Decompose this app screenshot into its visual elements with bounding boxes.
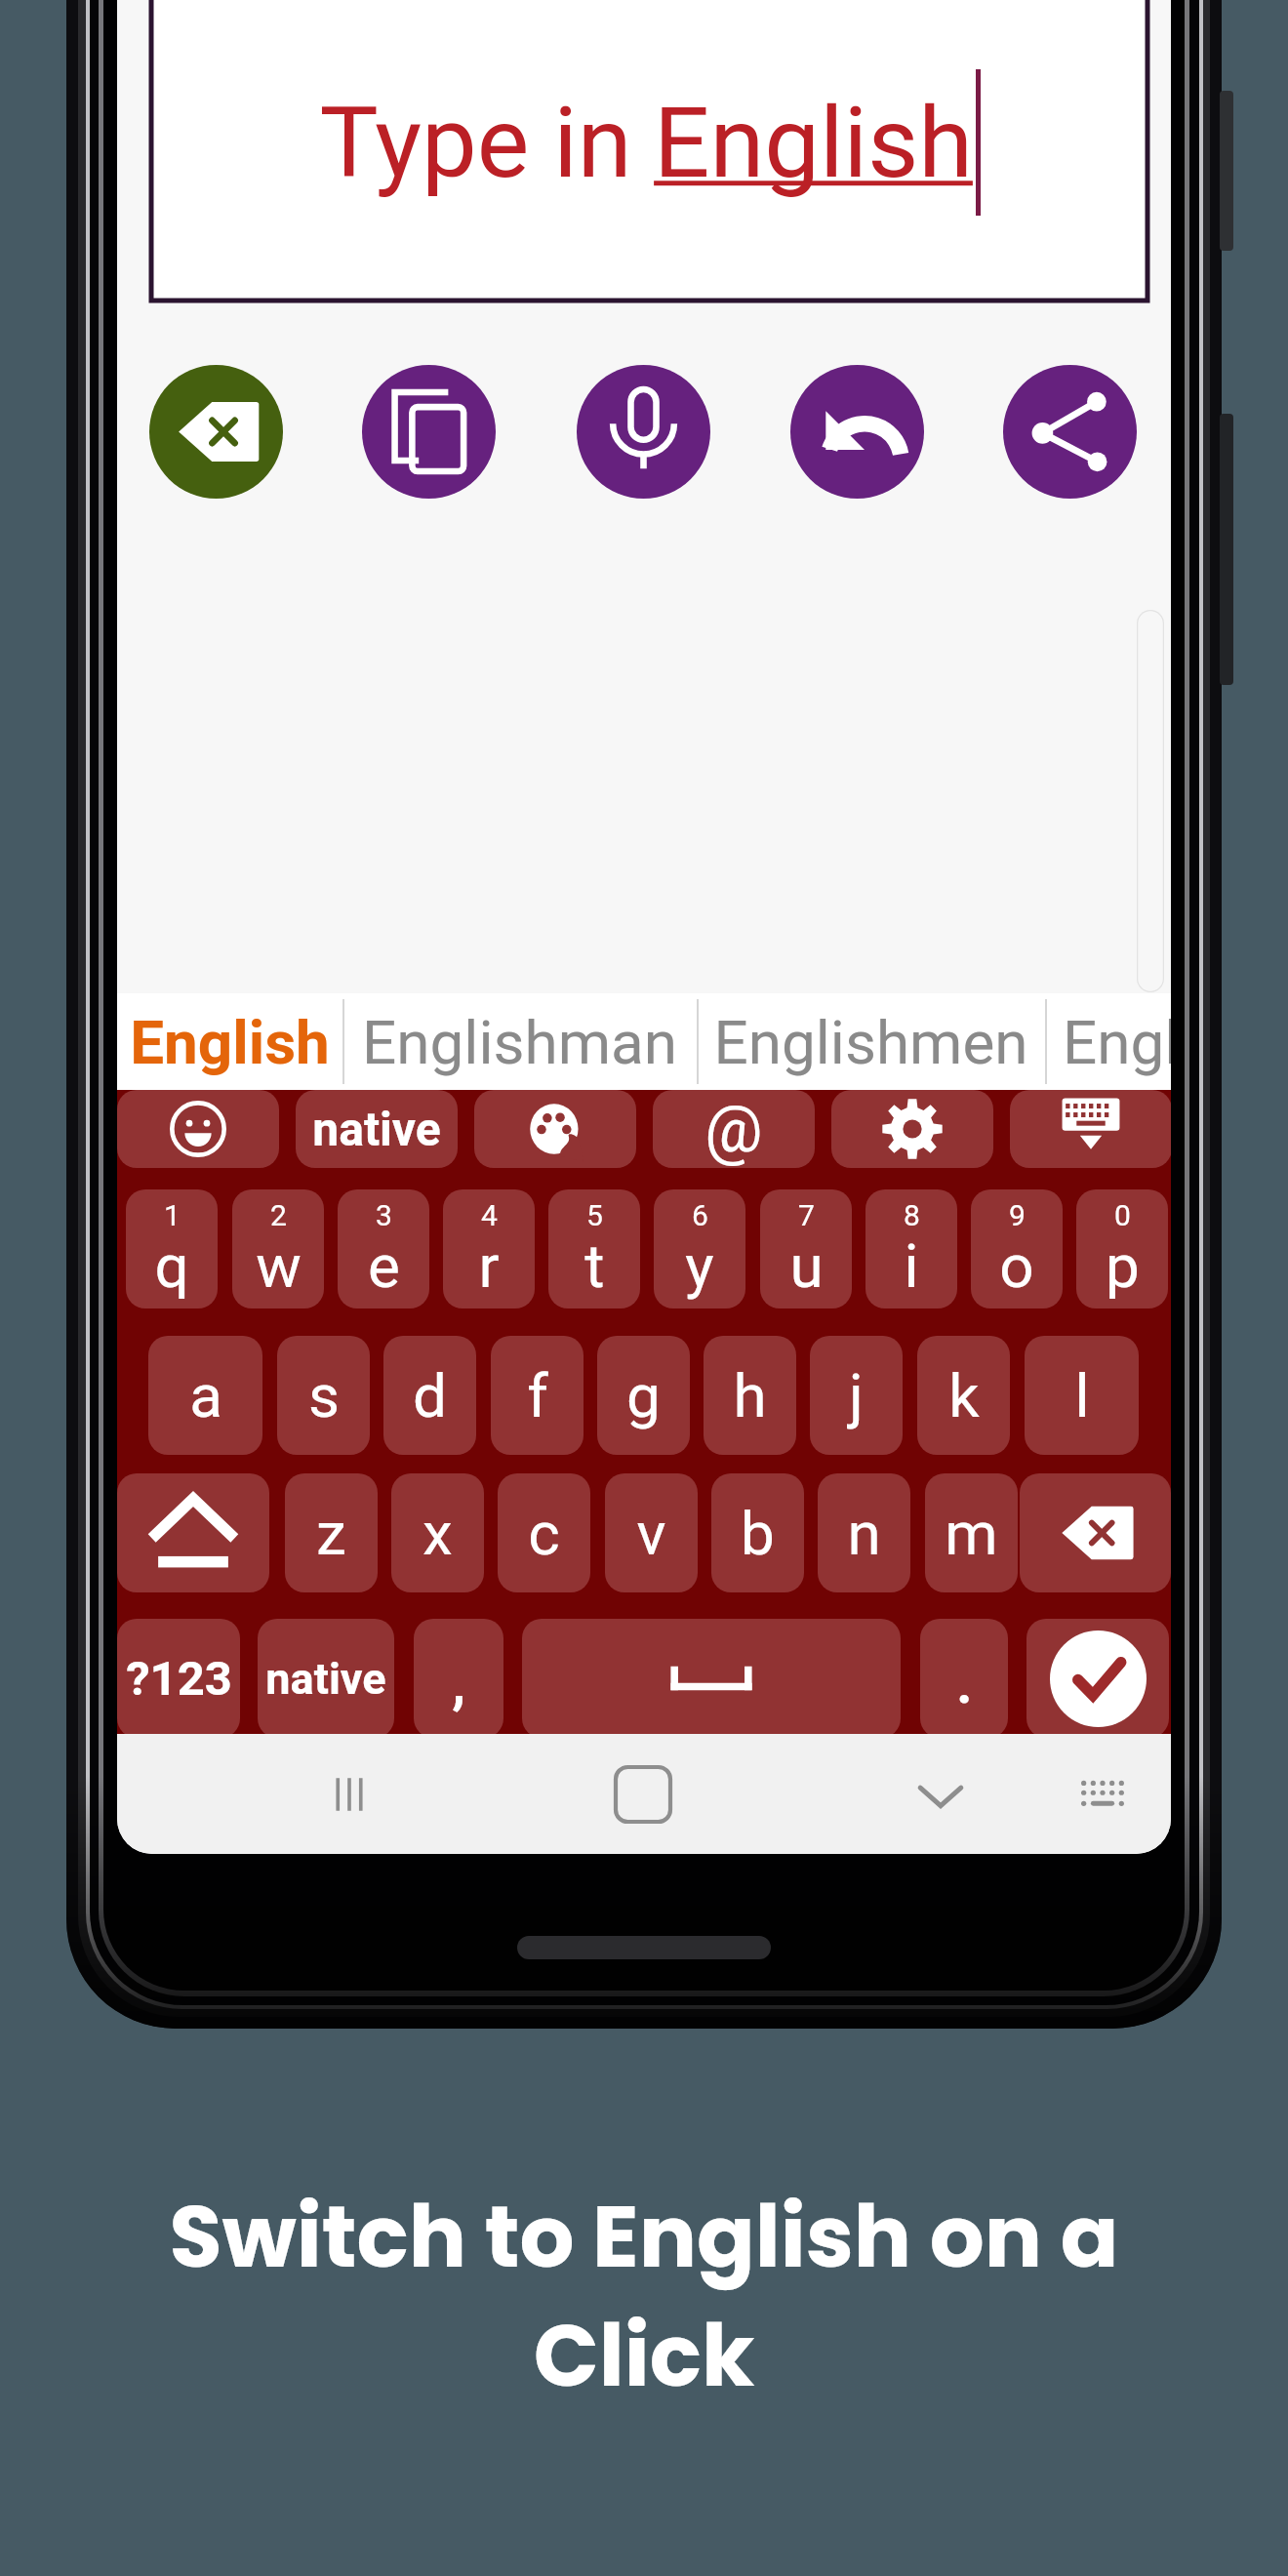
button[interactable]: s [277, 1336, 370, 1455]
button[interactable]: Hide keyboard [1010, 1090, 1171, 1168]
button[interactable]: Theme [474, 1090, 636, 1168]
button[interactable]: 6 [654, 1189, 745, 1308]
button[interactable]: Enter [1026, 1619, 1169, 1738]
button[interactable]: Share [1003, 365, 1137, 499]
staticText: 7 [798, 1198, 815, 1232]
staticText: Englishman [1063, 1007, 1171, 1078]
button[interactable]: 2 [232, 1189, 324, 1308]
staticText: b [741, 1498, 775, 1569]
button[interactable]: Voice input [577, 365, 710, 499]
staticText: Switch to English on a Click [98, 2177, 1190, 2416]
staticText: a [189, 1360, 222, 1431]
button[interactable]: d [383, 1336, 476, 1455]
button[interactable]: Copy [362, 365, 496, 499]
staticText: native [265, 1653, 386, 1705]
staticText: 1 [164, 1198, 181, 1232]
staticText: ?123 [126, 1651, 232, 1707]
staticText: e [368, 1230, 400, 1302]
button[interactable]: 3 [338, 1189, 429, 1308]
button[interactable]: b [711, 1473, 804, 1592]
staticText: c [528, 1498, 560, 1569]
button[interactable]: Englishman [1045, 993, 1171, 1090]
button[interactable]: l [1025, 1336, 1139, 1455]
button[interactable]: j [810, 1336, 903, 1455]
staticText: m [945, 1498, 998, 1569]
button[interactable]: @ [653, 1090, 815, 1168]
staticText: o [999, 1230, 1034, 1302]
staticText: t [584, 1230, 605, 1302]
button[interactable]: , [414, 1619, 503, 1738]
staticText: h [733, 1360, 767, 1431]
button[interactable]: ?123 [117, 1619, 240, 1738]
staticText: y [685, 1230, 714, 1302]
button[interactable]: 9 [971, 1189, 1063, 1308]
staticText: English [130, 1007, 330, 1078]
staticText: native [312, 1102, 441, 1156]
button[interactable]: Text input field [151, 0, 1147, 301]
button[interactable]: 5 [548, 1189, 640, 1308]
staticText: g [626, 1360, 661, 1431]
button[interactable]: Back [882, 1734, 999, 1854]
staticText: z [316, 1498, 346, 1569]
button[interactable]: n [818, 1473, 910, 1592]
staticText: . [956, 1652, 973, 1716]
button[interactable]: v [605, 1473, 698, 1592]
button[interactable]: 8 [865, 1189, 957, 1308]
button[interactable]: Delete [1020, 1473, 1171, 1592]
button[interactable]: x [391, 1473, 484, 1592]
button[interactable]: English [117, 993, 342, 1090]
button[interactable]: Settings [831, 1090, 993, 1168]
button[interactable]: Shift [117, 1473, 269, 1592]
button[interactable]: c [498, 1473, 590, 1592]
staticText: d [413, 1360, 447, 1431]
staticText: q [154, 1230, 189, 1302]
staticText: Englishman [362, 1007, 677, 1078]
staticText: , [452, 1652, 465, 1716]
button[interactable]: native [296, 1090, 458, 1168]
button[interactable]: 7 [760, 1189, 852, 1308]
staticText: w [256, 1230, 302, 1302]
button[interactable]: Home [584, 1734, 702, 1854]
staticText: x [423, 1498, 453, 1569]
button[interactable]: Englishmen [697, 993, 1045, 1090]
staticText: k [948, 1360, 980, 1431]
staticText: p [1106, 1230, 1140, 1302]
button[interactable]: 4 [443, 1189, 535, 1308]
button[interactable]: Space [522, 1619, 901, 1738]
button[interactable]: 0 [1076, 1189, 1168, 1308]
button[interactable]: g [597, 1336, 690, 1455]
button[interactable]: Clear text [149, 365, 283, 499]
staticText: 9 [1009, 1198, 1026, 1232]
button[interactable]: Undo [790, 365, 924, 499]
staticText: English [654, 85, 973, 200]
button[interactable]: 1 [126, 1189, 218, 1308]
staticText: @ [704, 1092, 763, 1167]
button[interactable]: f [491, 1336, 584, 1455]
button[interactable]: . [920, 1619, 1008, 1738]
staticText: s [308, 1360, 340, 1431]
staticText: 6 [692, 1198, 708, 1232]
button[interactable]: Recents [291, 1734, 408, 1854]
staticText: 4 [481, 1198, 498, 1232]
button[interactable]: a [148, 1336, 262, 1455]
button[interactable]: Emoji [117, 1090, 279, 1168]
staticText: f [527, 1360, 548, 1431]
staticText: 0 [1114, 1198, 1131, 1232]
staticText: r [478, 1230, 500, 1302]
button[interactable]: Switch keyboard [1044, 1734, 1161, 1854]
staticText: 5 [586, 1198, 603, 1232]
button[interactable]: h [704, 1336, 796, 1455]
button[interactable]: native [258, 1619, 394, 1738]
staticText: 2 [270, 1198, 287, 1232]
staticText: Type in [319, 85, 632, 200]
staticText: i [904, 1230, 919, 1302]
button[interactable]: k [917, 1336, 1010, 1455]
button[interactable]: Englishman [342, 993, 697, 1090]
button[interactable]: m [925, 1473, 1018, 1592]
staticText: j [849, 1360, 864, 1431]
staticText: Englishmen [713, 1007, 1028, 1078]
staticText: 3 [376, 1198, 392, 1232]
staticText: 8 [904, 1198, 920, 1232]
staticText: l [1074, 1360, 1090, 1431]
button[interactable]: z [285, 1473, 378, 1592]
